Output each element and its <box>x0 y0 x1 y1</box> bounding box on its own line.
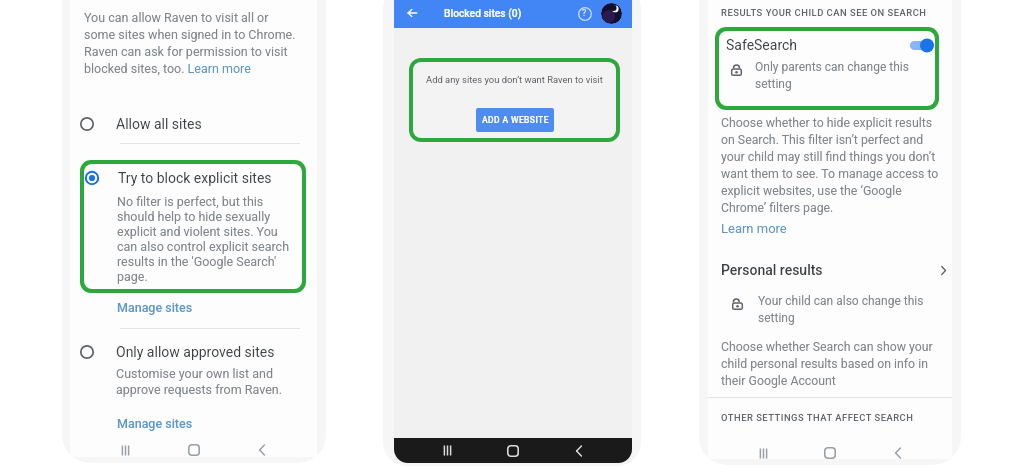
staticText: Try to block explicit sites <box>118 170 272 186</box>
button[interactable]: Only allow approved sites <box>79 339 314 365</box>
staticText: Customise your own list and approve requ… <box>116 366 298 397</box>
button[interactable]: Add any sites you don’t want Raven to vi… <box>413 62 616 138</box>
button[interactable]: Home <box>500 438 526 463</box>
button[interactable]: Home <box>181 437 207 463</box>
staticText: ADD A WEBSITE <box>482 115 549 125</box>
button[interactable]: Recent apps <box>112 437 138 463</box>
button[interactable]: Try to block explicit sites <box>84 164 302 289</box>
button[interactable]: SafeSearch toggle <box>910 38 934 53</box>
button[interactable]: Back <box>566 438 592 463</box>
button[interactable]: Recent apps <box>434 438 460 463</box>
button[interactable]: Navigate up <box>403 4 421 22</box>
button[interactable]: Back <box>249 437 275 463</box>
staticText: No filter is perfect, but this should he… <box>117 194 293 284</box>
staticText: Choose whether to hide explicit results … <box>721 116 940 215</box>
staticText: Allow all sites <box>116 116 202 132</box>
button[interactable]: Recent apps <box>750 440 776 465</box>
button[interactable]: SafeSearch <box>719 31 935 106</box>
button[interactable]: ADD A WEBSITE <box>476 108 554 132</box>
button[interactable]: Home <box>817 440 843 465</box>
staticText: You can allow Raven to visit all or some… <box>84 10 300 76</box>
staticText: SafeSearch <box>726 37 798 53</box>
button[interactable]: Personal results <box>721 258 949 282</box>
button[interactable]: Learn more <box>721 221 787 236</box>
staticText: Only allow approved sites <box>116 344 275 360</box>
button[interactable]: Allow all sites <box>79 111 309 137</box>
staticText: Your child can also change this setting <box>758 294 934 325</box>
button[interactable]: Manage sites <box>117 300 193 315</box>
button[interactable]: Help <box>575 4 594 23</box>
button[interactable]: Back <box>885 440 911 465</box>
button[interactable]: Manage sites <box>117 416 193 431</box>
staticText: Add any sites you don’t want Raven to vi… <box>426 74 603 85</box>
staticText: OTHER SETTINGS THAT AFFECT SEARCH <box>721 412 914 423</box>
staticText: Personal results <box>721 262 823 278</box>
staticText: ? <box>582 8 587 19</box>
staticText: RESULTS YOUR CHILD CAN SEE ON SEARCH <box>721 7 927 18</box>
button[interactable]: Account <box>601 3 622 24</box>
staticText: Choose whether Search can show your chil… <box>721 340 940 388</box>
staticText: Only parents can change this setting <box>755 60 920 91</box>
staticText: Blocked sites (0) <box>444 7 522 19</box>
